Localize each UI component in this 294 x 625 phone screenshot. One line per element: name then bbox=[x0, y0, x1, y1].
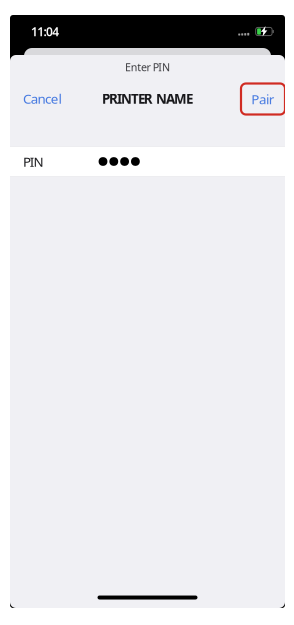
staticText: PRINTER bbox=[102, 90, 153, 107]
staticText: Cancel bbox=[23, 90, 61, 107]
staticText: 11:04 bbox=[31, 23, 59, 39]
staticText: NAME bbox=[156, 90, 193, 107]
staticText: PIN bbox=[23, 153, 44, 170]
staticText: Pair bbox=[251, 90, 275, 108]
staticText: Enter PIN bbox=[125, 60, 170, 74]
button[interactable]: Pair bbox=[241, 83, 285, 114]
button[interactable]: Cancel bbox=[23, 85, 69, 111]
